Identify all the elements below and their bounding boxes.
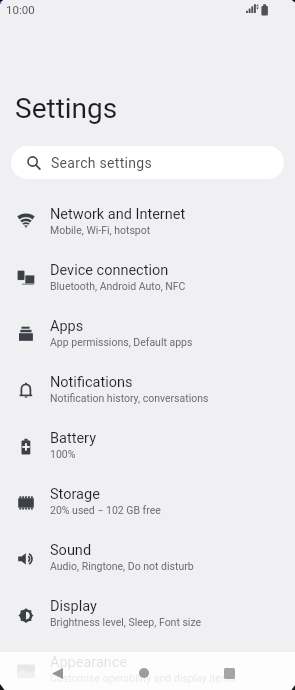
staticText: 100% <box>50 448 76 460</box>
staticText: Customise operability and display items <box>50 672 236 684</box>
button[interactable]: Sound <box>0 529 295 585</box>
button[interactable] <box>217 661 241 685</box>
button[interactable]: Appearance <box>0 641 295 690</box>
staticText: Mobile, Wi-Fi, hotspot <box>50 224 151 236</box>
staticText: Network and Internet <box>50 206 186 223</box>
button[interactable]: Apps <box>0 305 295 361</box>
staticText: Storage <box>50 486 100 503</box>
staticText: Search settings <box>51 155 153 171</box>
staticText: Notifications <box>50 374 133 391</box>
staticText: Appearance <box>50 654 128 671</box>
staticText: Notification history, conversations <box>50 392 209 404</box>
staticText: Audio, Ringtone, Do not disturb <box>50 560 194 572</box>
button[interactable]: Display <box>0 585 295 641</box>
button[interactable]: Battery <box>0 417 295 473</box>
staticText: Brightness level, Sleep, Font size <box>50 616 202 628</box>
button[interactable]: Storage <box>0 473 295 529</box>
button[interactable]: Network and Internet <box>0 193 295 249</box>
button[interactable]: Search settings <box>11 146 284 179</box>
button[interactable]: Device connection <box>0 249 295 305</box>
staticText: Display <box>50 598 97 615</box>
staticText: 20% used − 102 GB free <box>50 504 161 516</box>
button[interactable] <box>45 661 70 685</box>
staticText: Sound <box>50 542 92 559</box>
staticText: App permissions, Default apps <box>50 336 193 348</box>
staticText: Device connection <box>50 262 169 279</box>
staticText: Battery <box>50 430 96 447</box>
button[interactable]: Notifications <box>0 361 295 417</box>
staticText: 10:00 <box>6 3 35 16</box>
staticText: Bluetooth, Android Auto, NFC <box>50 280 186 292</box>
staticText: Apps <box>50 318 84 335</box>
button[interactable] <box>132 661 156 685</box>
staticText: Settings <box>15 92 118 125</box>
